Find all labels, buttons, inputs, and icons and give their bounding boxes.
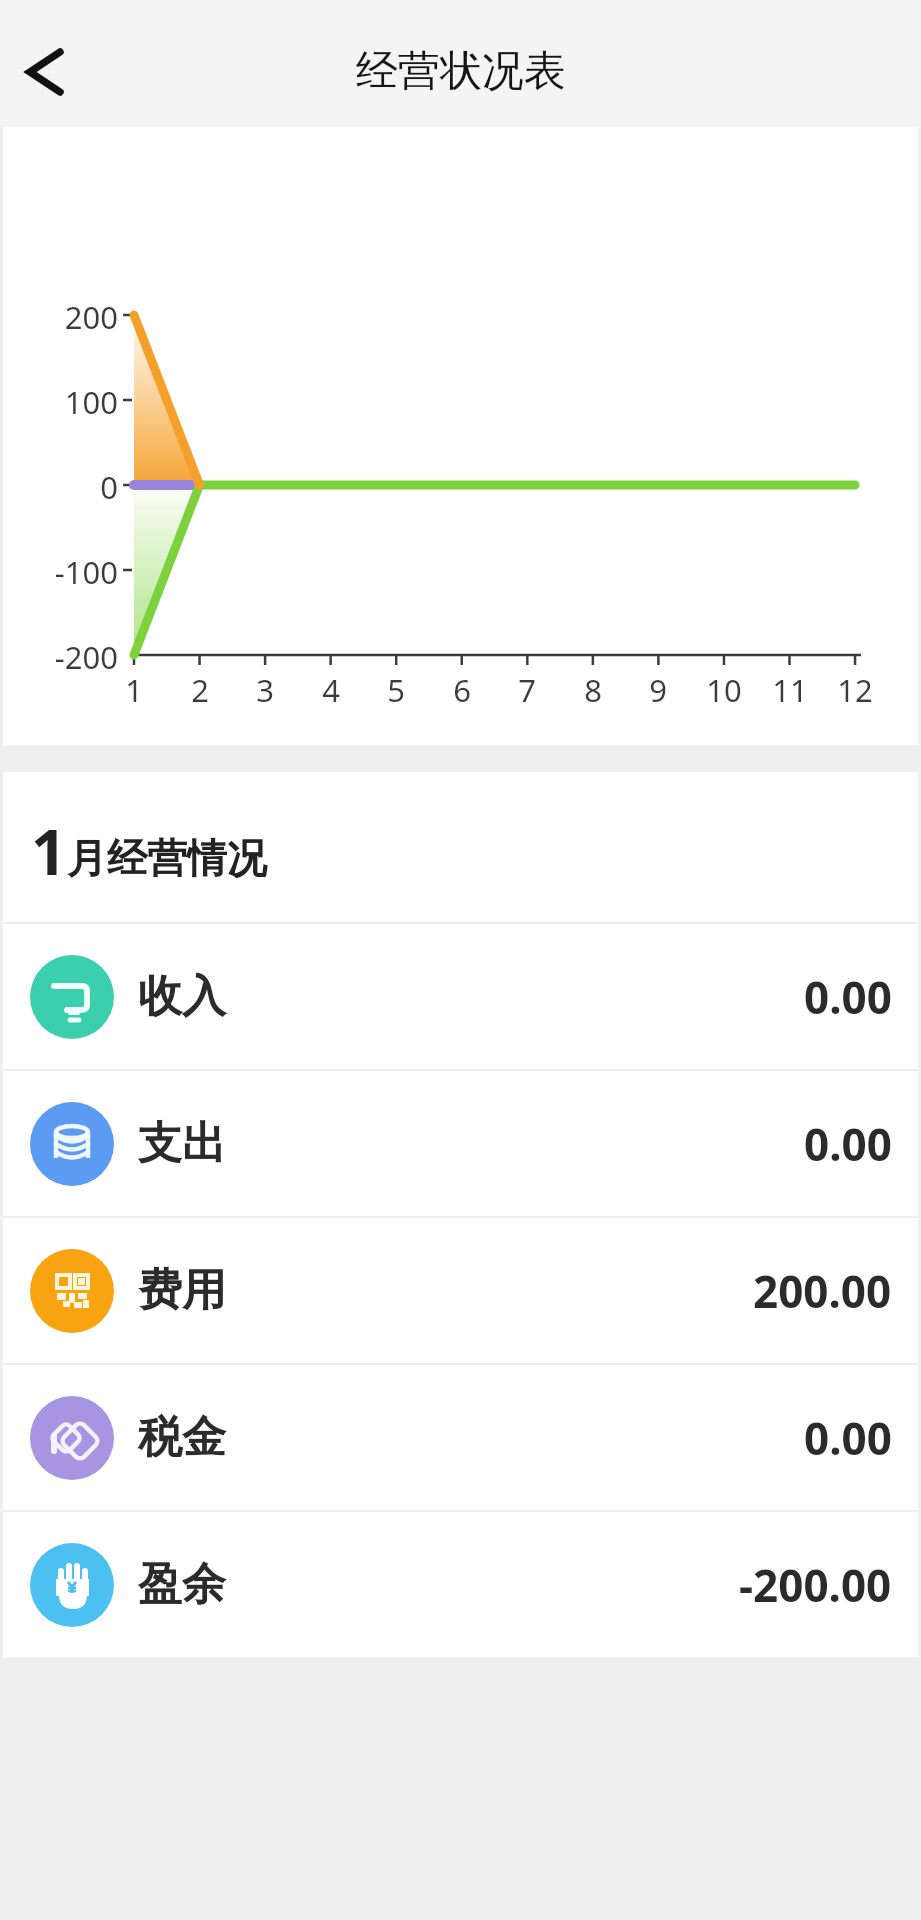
staticText: 7 (494, 669, 560, 711)
staticText: 8 (560, 669, 626, 711)
staticText: 100 (30, 381, 118, 423)
staticText: 10 (691, 669, 757, 711)
staticText: -200 (30, 636, 118, 678)
staticText: 4 (298, 669, 364, 711)
staticText: 1 (101, 669, 167, 711)
staticText: 月经营情况 (67, 833, 267, 883)
staticText: 费用 (138, 1263, 226, 1318)
staticText: 9 (625, 669, 691, 711)
staticText: 1 (31, 809, 67, 893)
staticText: 6 (429, 669, 495, 711)
staticText: 12 (822, 669, 888, 711)
staticText: 0.00 (804, 967, 892, 1027)
staticText: 0.00 (804, 1114, 892, 1174)
button[interactable]: 支出 (3, 1071, 918, 1216)
staticText: -200.00 (739, 1555, 892, 1615)
button[interactable] (18, 42, 70, 102)
staticText: 盈余 (138, 1557, 226, 1612)
staticText: -100 (30, 551, 118, 593)
button[interactable]: 费用 (3, 1218, 918, 1363)
staticText: 11 (757, 669, 823, 711)
button[interactable]: 税金 (3, 1365, 918, 1510)
button[interactable]: 盈余 (3, 1512, 918, 1657)
staticText: 0 (30, 466, 118, 508)
staticText: 5 (363, 669, 429, 711)
staticText: 支出 (138, 1116, 226, 1171)
staticText: 税金 (138, 1410, 226, 1465)
staticText: 3 (232, 669, 298, 711)
staticText: 200 (30, 296, 118, 338)
staticText: 收入 (138, 969, 226, 1024)
staticText: 2 (167, 669, 233, 711)
staticText: 0.00 (804, 1408, 892, 1468)
staticText: 200.00 (753, 1261, 892, 1321)
staticText: 经营状况表 (356, 45, 566, 98)
button[interactable]: 收入 (3, 924, 918, 1069)
